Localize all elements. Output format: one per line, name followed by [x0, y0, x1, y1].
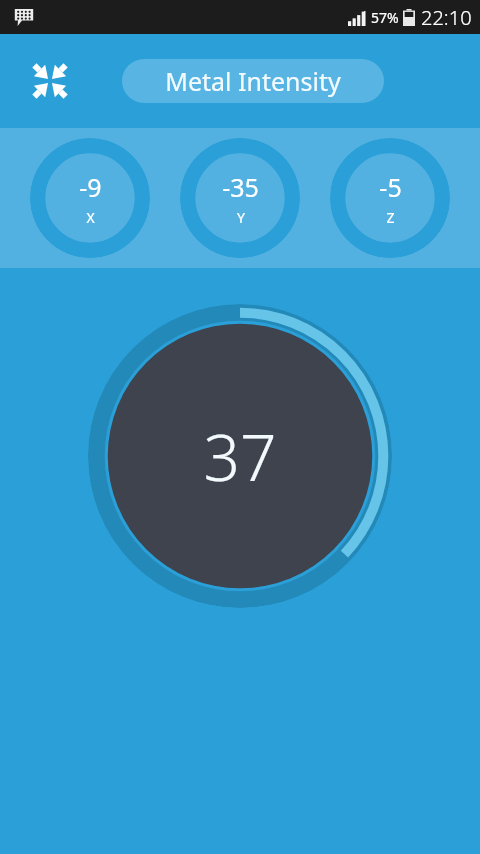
button[interactable]: 37 — [88, 304, 392, 608]
staticText: 57% — [371, 8, 399, 27]
staticText: Metal Intensity — [165, 64, 341, 98]
button[interactable]: Collapse — [22, 53, 78, 109]
button[interactable]: -9 — [30, 138, 150, 258]
button[interactable]: -5 — [330, 138, 450, 258]
staticText: X — [86, 208, 95, 227]
button[interactable]: Metal Intensity — [122, 59, 384, 103]
button[interactable]: -35 — [180, 138, 300, 258]
staticText: 22:10 — [421, 4, 472, 31]
staticText: -5 — [379, 170, 402, 204]
staticText: -35 — [222, 170, 259, 204]
staticText: Z — [386, 208, 395, 227]
staticText: Y — [237, 208, 245, 227]
staticText: -9 — [79, 170, 102, 204]
staticText: 37 — [203, 413, 277, 500]
